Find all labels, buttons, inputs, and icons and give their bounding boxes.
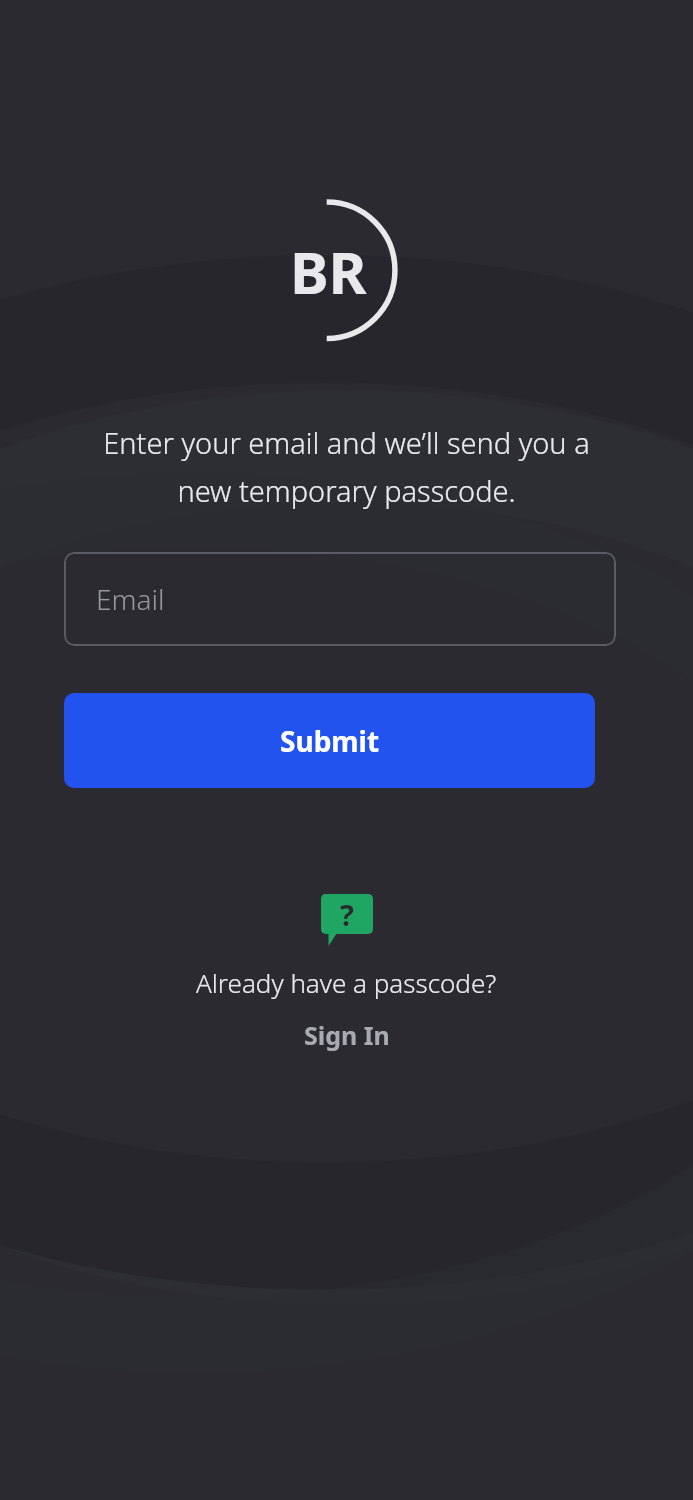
button[interactable]: Sign In xyxy=(294,1016,400,1054)
staticText: BR xyxy=(290,232,367,311)
staticText: ? xyxy=(340,895,354,934)
staticText: Email xyxy=(96,580,165,618)
staticText: Already have a passcode? xyxy=(196,965,497,1000)
button[interactable]: Help xyxy=(321,894,373,946)
staticText: Enter your email and we’ll send you a ne… xyxy=(40,423,653,510)
staticText: Sign In xyxy=(304,1018,390,1052)
button[interactable]: Submit xyxy=(64,693,595,788)
staticText: Submit xyxy=(280,722,380,760)
button[interactable]: Email xyxy=(64,552,616,646)
